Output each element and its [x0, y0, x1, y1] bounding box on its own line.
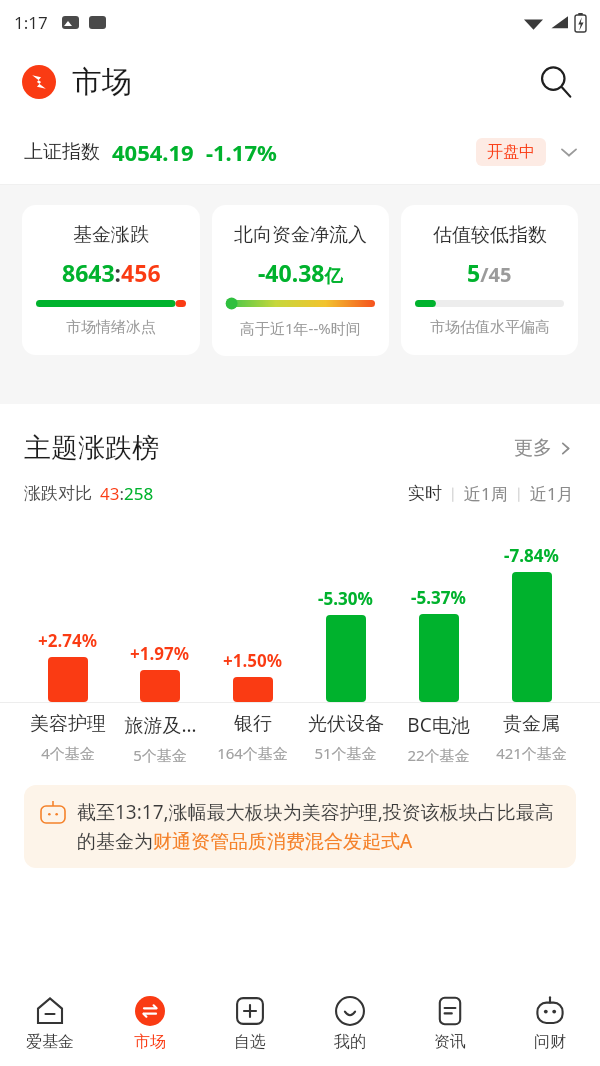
staticText: 涨跌对比 [24, 483, 92, 504]
button[interactable]: -5.37% [392, 586, 485, 702]
staticText: 1:17 [14, 11, 48, 34]
staticText: -5.30% [318, 587, 373, 610]
staticText: 市场估值水平偏高 [430, 318, 550, 337]
button[interactable]: 我的 [300, 982, 400, 1066]
staticText: 资讯 [434, 1032, 466, 1052]
button[interactable]: Search [534, 60, 578, 104]
staticText: ｜ [512, 485, 526, 503]
staticText: 8643:456 [62, 257, 161, 288]
button[interactable]: 自选 [200, 982, 300, 1066]
staticText: +1.50% [223, 649, 283, 672]
staticText: 自选 [234, 1032, 266, 1052]
other: Expand [558, 141, 580, 163]
staticText: -5.37% [411, 586, 466, 609]
button[interactable]: 资讯 [400, 982, 500, 1066]
staticText: 4054.19 [112, 137, 194, 167]
staticText: 市场 [134, 1032, 166, 1052]
staticText: 开盘中 [487, 142, 535, 162]
button[interactable]: 基金涨跌 [22, 205, 200, 355]
button[interactable]: 上证指数 [0, 120, 600, 184]
staticText: 北向资金净流入 [234, 223, 367, 247]
staticText: 市场 [72, 63, 132, 101]
staticText: 贵金属 [503, 712, 560, 736]
staticText: 更多 [514, 436, 552, 460]
staticText: 51个基金 [314, 743, 377, 763]
button[interactable]: 市场 [100, 982, 200, 1066]
staticText: 4个基金 [41, 743, 95, 763]
button[interactable]: 截至13:17,涨幅最大板块为美容护理,投资该板块占比最高的基金为财通资管品质消… [24, 785, 576, 868]
button[interactable]: 问财 [500, 982, 600, 1066]
staticText: ｜ [446, 485, 460, 503]
staticText: 旅游及… [124, 712, 197, 738]
staticText: 高于近1年--%时间 [240, 318, 361, 338]
staticText: 美容护理 [30, 712, 106, 736]
button[interactable]: +1.97% [114, 642, 206, 702]
staticText: 爱基金 [26, 1032, 74, 1052]
staticText: 市场情绪冰点 [66, 318, 156, 337]
button[interactable]: 估值较低指数 [401, 205, 578, 355]
staticText: 近1月 [530, 482, 574, 505]
button[interactable]: +1.50% [206, 649, 299, 702]
button[interactable]: -7.84% [485, 544, 578, 702]
staticText: 上证指数 [24, 140, 100, 164]
staticText: 164个基金 [217, 743, 288, 763]
button[interactable]: 北向资金净流入 [212, 205, 389, 356]
staticText: 银行 [234, 712, 272, 736]
staticText: 问财 [534, 1032, 566, 1052]
button[interactable]: 实时 [404, 483, 446, 504]
staticText: 421个基金 [496, 743, 567, 763]
button[interactable]: 更多 [508, 430, 580, 466]
staticText: 光伏设备 [308, 712, 384, 736]
staticText: 主题涨跌榜 [24, 431, 159, 465]
staticText: -40.38亿 [258, 257, 343, 288]
staticText: 基金涨跌 [73, 223, 149, 247]
button[interactable]: -5.30% [299, 587, 392, 702]
staticText: +1.97% [130, 642, 190, 665]
button[interactable]: 爱基金 [0, 982, 100, 1066]
staticText: -7.84% [504, 544, 559, 567]
staticText: 实时 [408, 483, 442, 504]
staticText: 43:258 [100, 482, 154, 505]
staticText: 估值较低指数 [433, 223, 547, 247]
staticText: 截至13:17,涨幅最大板块为美容护理,投资该板块占比最高的基金为财通资管品质消… [77, 799, 560, 854]
staticText: 5/45 [467, 257, 512, 288]
staticText: 我的 [334, 1032, 366, 1052]
staticText: BC电池 [407, 712, 470, 738]
button[interactable]: 近1周 [460, 482, 512, 505]
staticText: 5个基金 [133, 745, 187, 765]
button[interactable]: +2.74% [22, 629, 114, 702]
staticText: 近1周 [464, 482, 508, 505]
staticText: 22个基金 [407, 745, 470, 765]
staticText: +2.74% [38, 629, 98, 652]
button[interactable]: 近1月 [526, 482, 578, 505]
staticText: -1.17% [206, 137, 277, 167]
